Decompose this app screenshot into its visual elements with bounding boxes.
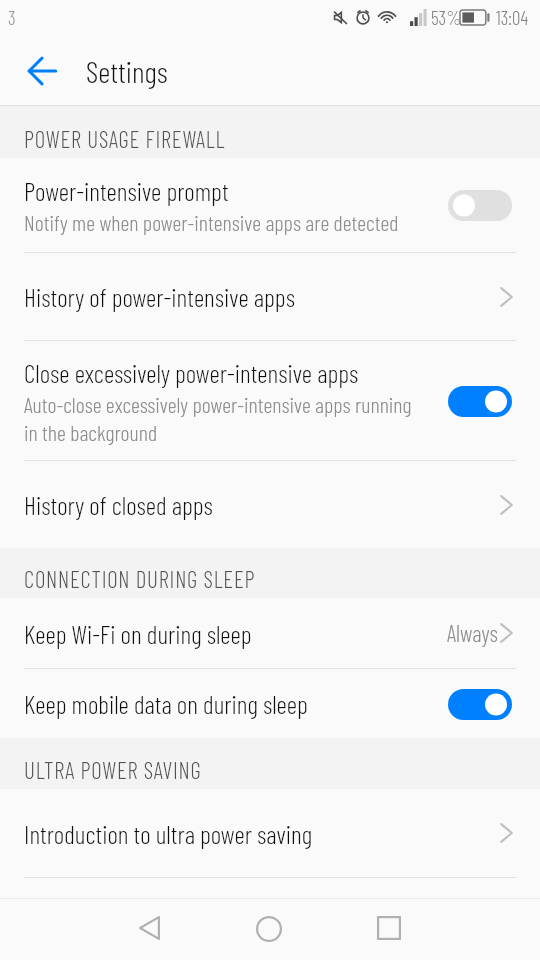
button[interactable]: Power-intensive prompt [0,158,540,252]
staticText: Power-intensive prompt [24,175,229,206]
staticText: History of power-intensive apps [24,281,500,312]
staticText: Keep mobile data on during sleep [24,688,442,719]
button[interactable]: Back [89,899,209,960]
staticText: Keep Wi-Fi on during sleep [24,618,447,649]
staticText: Always [447,619,498,647]
button[interactable]: Home [209,899,329,960]
button[interactable]: Recents [329,899,449,960]
button[interactable]: History of closed apps [0,461,540,548]
button[interactable]: Keep mobile data on during sleep [0,669,540,738]
button[interactable]: Back [0,36,84,105]
staticText: History of closed apps [24,489,500,520]
button[interactable]: Introduction to ultra power saving [0,789,540,877]
staticText: 3 [8,6,16,29]
button[interactable]: Power-intensive prompt toggle [442,182,518,228]
staticText: 53% [431,6,462,29]
button[interactable]: Keep Wi-Fi on during sleep [0,598,540,668]
button[interactable]: Keep mobile data on during sleep toggle [442,681,518,727]
button[interactable]: Close excessively power-intensive apps t… [442,378,518,424]
button[interactable]: History of power-intensive apps [0,253,540,340]
staticText: POWER USAGE FIREWALL [24,125,226,153]
staticText: ULTRA POWER SAVING [24,756,202,784]
staticText: Auto-close excessively power-intensive a… [24,391,424,445]
staticText: 13:04 [496,6,528,29]
staticText: Notify me when power-intensive apps are … [24,209,399,235]
button[interactable]: Close excessively power-intensive apps [0,341,540,460]
staticText: Introduction to ultra power saving [24,818,500,849]
staticText: Settings [86,53,168,89]
staticText: Close excessively power-intensive apps [24,357,359,388]
staticText: CONNECTION DURING SLEEP [24,565,256,593]
